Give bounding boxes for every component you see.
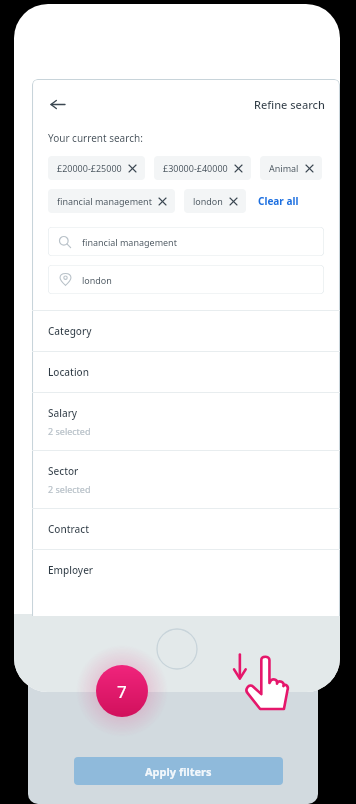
staticText: Animal xyxy=(269,162,299,174)
staticText: Sector xyxy=(48,464,79,478)
button[interactable]: Employer xyxy=(32,550,340,590)
button[interactable]: london xyxy=(184,189,246,213)
button[interactable]: Back xyxy=(40,87,74,121)
staticText: 2 selected xyxy=(48,483,91,495)
button[interactable]: Category xyxy=(32,311,340,351)
button[interactable]: £30000-£40000 xyxy=(154,156,251,180)
staticText: £30000-£40000 xyxy=(163,162,228,174)
button[interactable]: Contract xyxy=(32,509,340,549)
button[interactable]: £20000-£25000 xyxy=(48,156,145,180)
staticText: Apply filters xyxy=(145,764,212,779)
staticText: Category xyxy=(48,324,92,338)
staticText: Clear all xyxy=(258,194,299,208)
button[interactable]: Animal xyxy=(260,156,322,180)
button[interactable]: Salary xyxy=(32,393,340,450)
staticText: Refine search xyxy=(254,97,325,112)
staticText: Location xyxy=(48,365,89,379)
staticText: 7 xyxy=(117,680,127,703)
button[interactable]: Location xyxy=(32,352,340,392)
staticText: financial management xyxy=(82,236,177,248)
staticText: Contract xyxy=(48,522,90,536)
button[interactable]: london xyxy=(48,265,324,294)
button[interactable]: Apply filters xyxy=(74,757,283,785)
staticText: Employer xyxy=(48,563,94,577)
staticText: financial management xyxy=(57,195,152,207)
button[interactable]: financial management xyxy=(48,227,324,256)
button[interactable]: financial management xyxy=(48,189,175,213)
other: Scroll down gesture xyxy=(230,652,288,714)
staticText: £20000-£25000 xyxy=(57,162,122,174)
staticText: 2 selected xyxy=(48,425,91,437)
staticText: london xyxy=(193,195,223,207)
staticText: Salary xyxy=(48,406,78,420)
button[interactable]: Sector xyxy=(32,451,340,508)
button[interactable]: Clear all xyxy=(255,190,302,212)
staticText: Your current search: xyxy=(48,131,143,145)
staticText: london xyxy=(82,274,112,286)
